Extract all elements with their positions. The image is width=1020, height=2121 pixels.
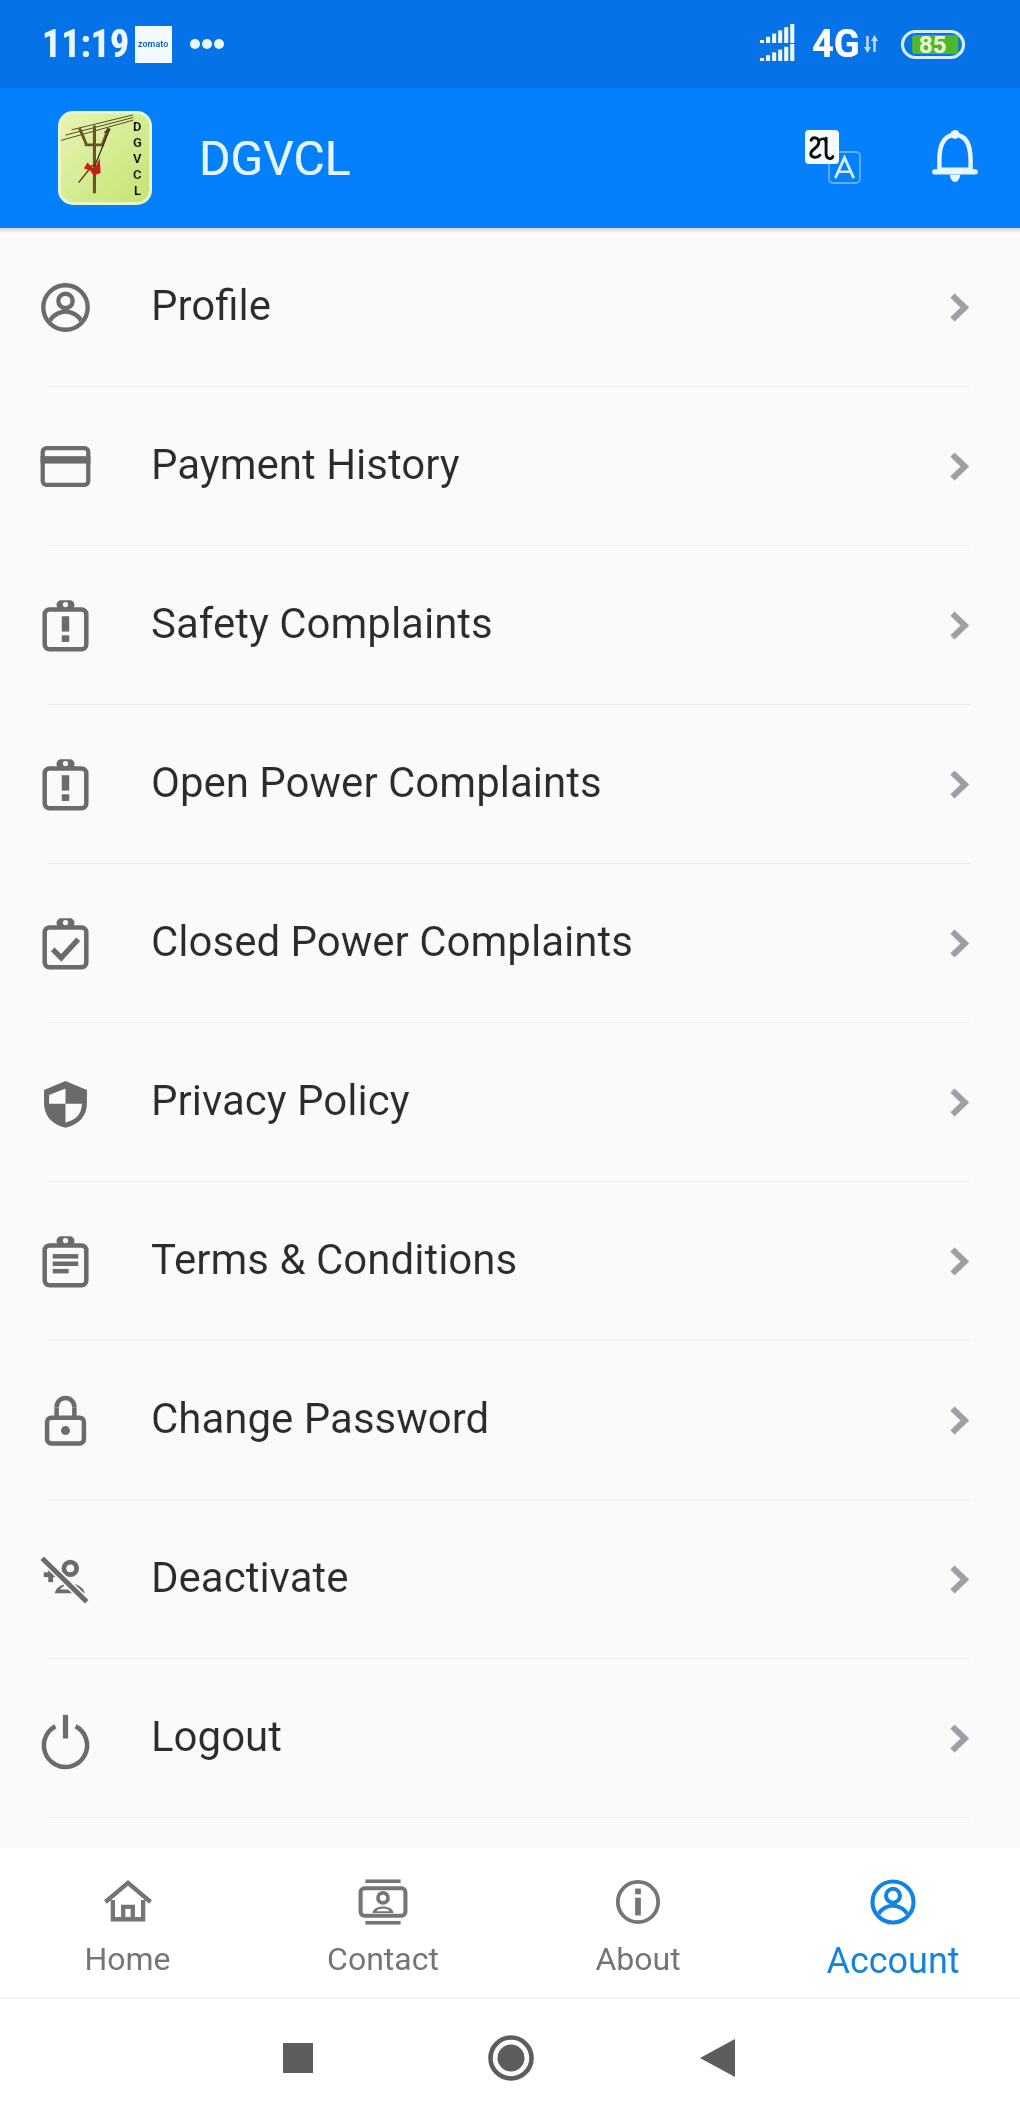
- staticText: 85: [919, 31, 947, 59]
- staticText: Account: [826, 1940, 960, 1982]
- button[interactable]: Home: [0, 1848, 255, 1998]
- button[interactable]: Terms & Conditions: [0, 1182, 1020, 1340]
- button[interactable]: Payment History: [0, 387, 1020, 545]
- button[interactable]: Change Password: [0, 1341, 1020, 1499]
- staticText: Safety Complaints: [151, 599, 493, 648]
- staticText: Privacy Policy: [151, 1076, 410, 1125]
- staticText: 11:19: [42, 22, 130, 67]
- staticText: L: [134, 183, 142, 198]
- staticText: Payment History: [151, 440, 460, 489]
- staticText: Logout: [151, 1712, 283, 1761]
- staticText: Contact: [327, 1940, 439, 1978]
- staticText: Terms & Conditions: [151, 1235, 518, 1284]
- button[interactable]: Contact: [255, 1848, 510, 1998]
- staticText: D: [133, 119, 142, 134]
- button[interactable]: Account: [765, 1848, 1020, 1998]
- button[interactable]: Notifications: [905, 108, 1005, 208]
- staticText: V: [133, 151, 142, 166]
- staticText: Deactivate: [151, 1553, 349, 1602]
- staticText: About: [595, 1940, 681, 1978]
- staticText: DGVCL: [199, 130, 351, 186]
- button[interactable]: Logout: [0, 1659, 1020, 1817]
- button[interactable]: Deactivate: [0, 1500, 1020, 1658]
- staticText: G: [133, 135, 142, 150]
- staticText: zomato: [138, 39, 169, 50]
- button[interactable]: Profile: [0, 228, 1020, 386]
- staticText: C: [133, 167, 142, 182]
- button[interactable]: Open Power Complaints: [0, 705, 1020, 863]
- button[interactable]: Change language: [783, 108, 883, 208]
- button[interactable]: About: [510, 1848, 765, 1998]
- staticText: Profile: [151, 281, 272, 330]
- staticText: 4G: [812, 22, 860, 67]
- staticText: Home: [84, 1940, 171, 1978]
- button[interactable]: Closed Power Complaints: [0, 864, 1020, 1022]
- staticText: Closed Power Complaints: [151, 917, 633, 966]
- staticText: Open Power Complaints: [151, 758, 602, 807]
- button[interactable]: Privacy Policy: [0, 1023, 1020, 1181]
- staticText: Change Password: [151, 1394, 490, 1443]
- button[interactable]: Safety Complaints: [0, 546, 1020, 704]
